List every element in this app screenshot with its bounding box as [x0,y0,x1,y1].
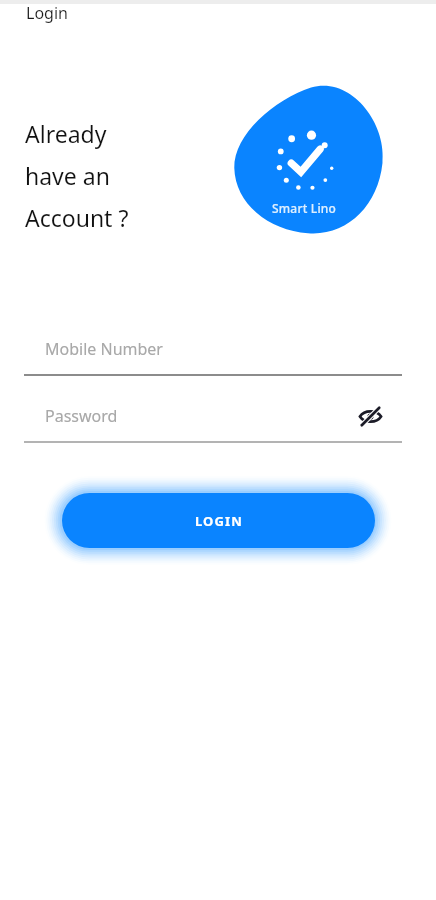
button[interactable]: Password [0,389,436,443]
staticText: Smart Lino [272,200,337,216]
button[interactable]: Mobile Number [0,322,436,376]
staticText: Already [25,118,107,149]
staticText: Account ? [25,202,129,233]
button[interactable]: LOGIN [62,493,375,548]
staticText: Mobile Number [45,338,163,360]
button[interactable]: Login [26,2,68,24]
staticText: Login [26,2,68,24]
staticText: LOGIN [195,512,243,530]
staticText: Password [45,405,118,427]
staticText: have an [25,160,110,191]
button[interactable]: Show password [353,399,387,433]
